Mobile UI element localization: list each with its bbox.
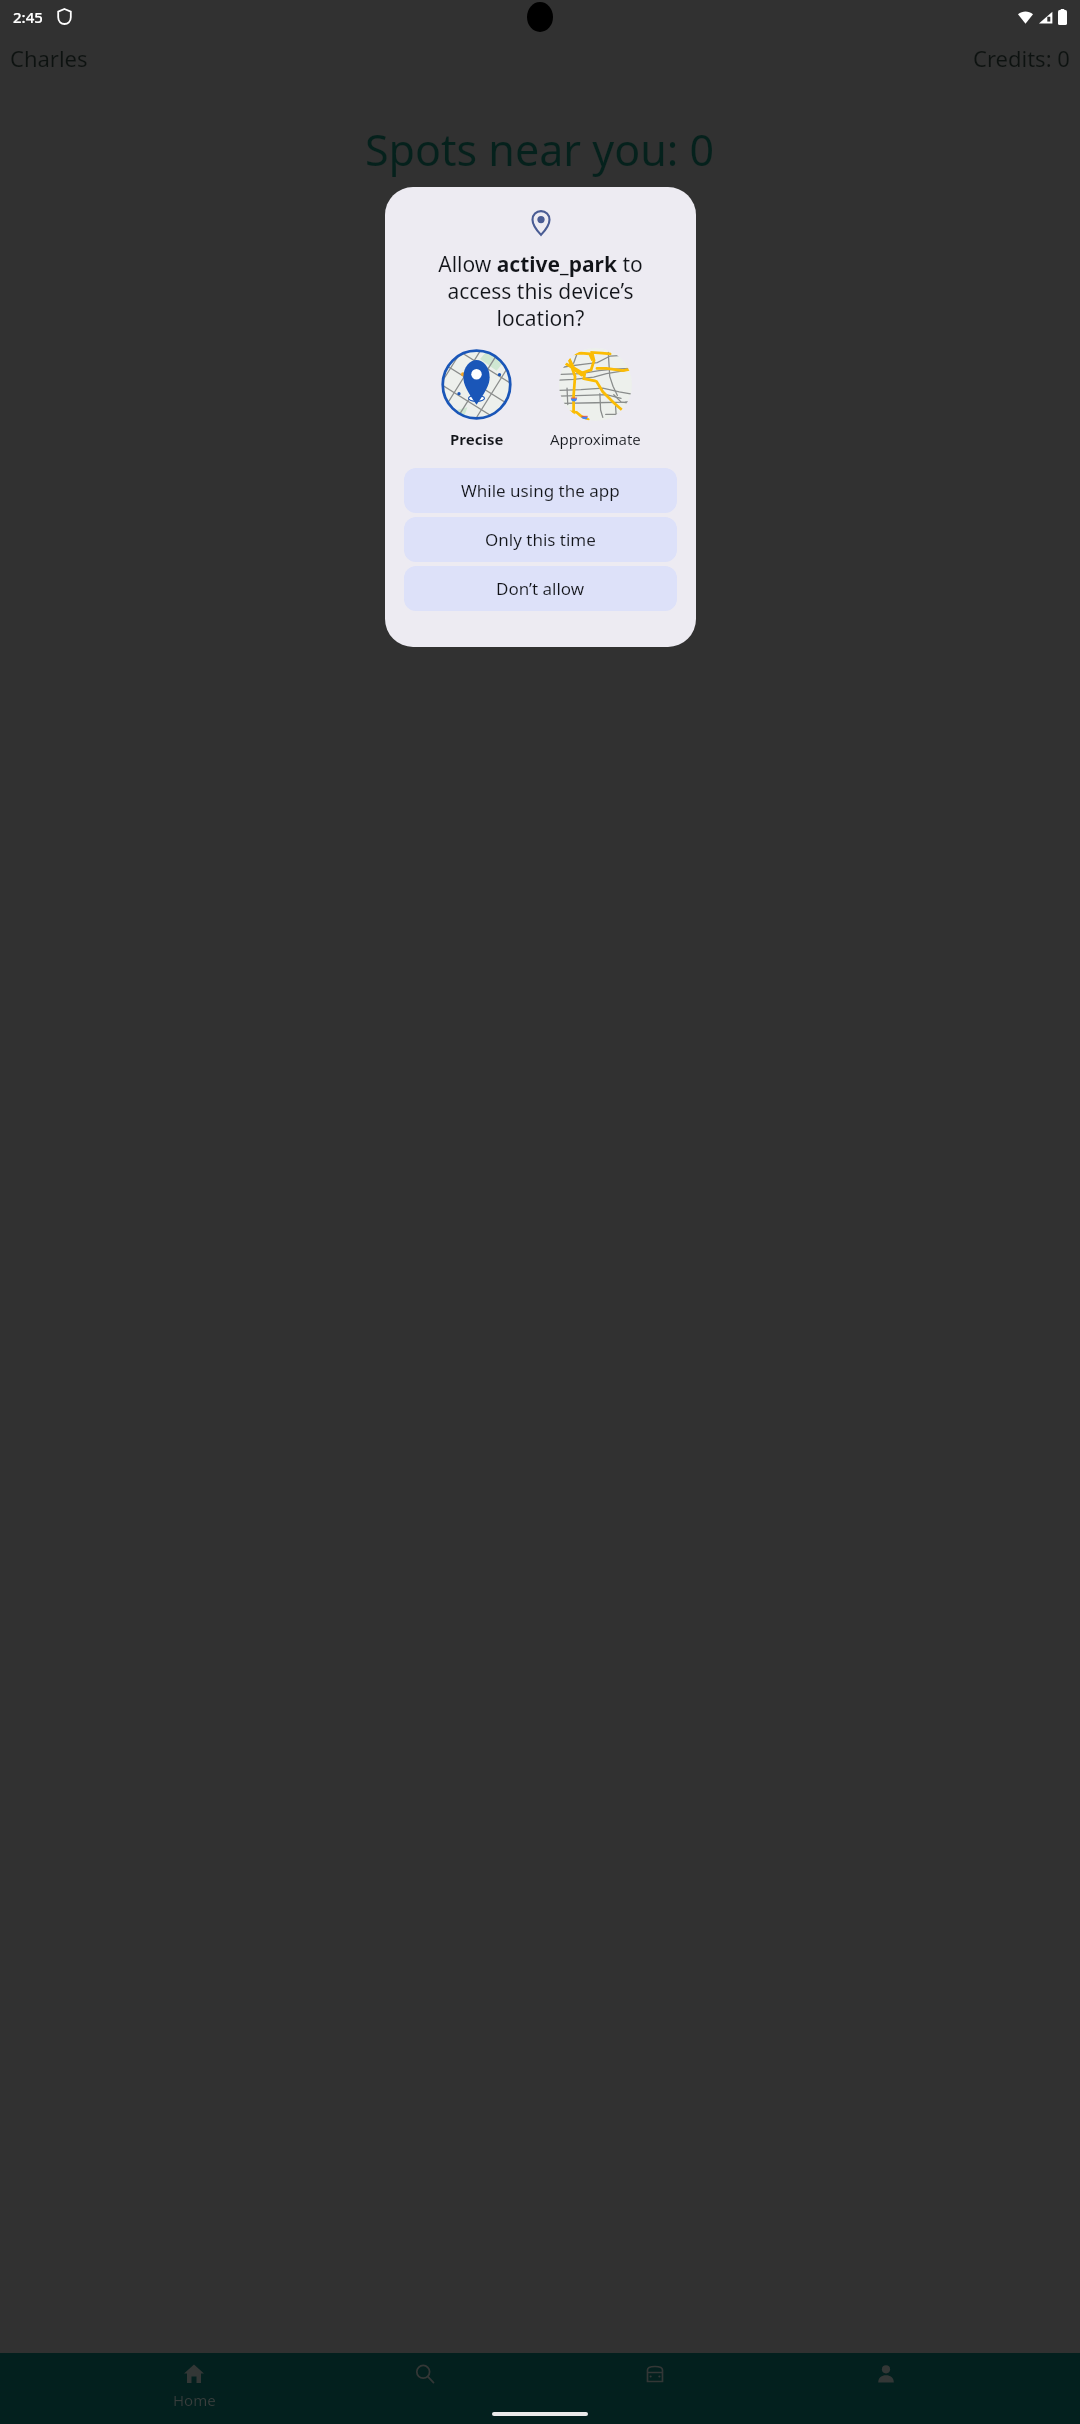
staticText: Home bbox=[173, 2390, 216, 2410]
button[interactable]: Approximate bbox=[550, 348, 641, 449]
button[interactable]: Only this time bbox=[404, 517, 677, 562]
staticText: While using the app bbox=[461, 479, 620, 502]
staticText: Allow active_park to access this device’… bbox=[407, 250, 674, 332]
staticText: Spots near you: 0 bbox=[365, 120, 715, 179]
staticText: Precise bbox=[450, 429, 504, 449]
staticText: Only this time bbox=[485, 528, 596, 551]
button[interactable]: Search bbox=[389, 2362, 461, 2386]
staticText: Don’t allow bbox=[496, 577, 585, 600]
staticText: Charles bbox=[10, 43, 88, 73]
button[interactable]: Cars bbox=[619, 2362, 691, 2386]
button[interactable]: While using the app bbox=[404, 468, 677, 513]
button[interactable]: Home bbox=[158, 2362, 230, 2410]
staticText: 2:45 bbox=[13, 7, 43, 27]
button[interactable]: Profile bbox=[850, 2362, 922, 2386]
button[interactable]: Don’t allow bbox=[404, 566, 677, 611]
staticText: Approximate bbox=[550, 429, 641, 449]
staticText: Credits: 0 bbox=[973, 43, 1070, 73]
button[interactable]: Precise bbox=[440, 348, 513, 449]
